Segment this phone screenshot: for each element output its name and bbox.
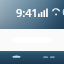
button[interactable]: Home: [0, 55, 33, 58]
button[interactable]: Browse: [33, 55, 64, 58]
staticText: 9:41: [16, 5, 38, 20]
